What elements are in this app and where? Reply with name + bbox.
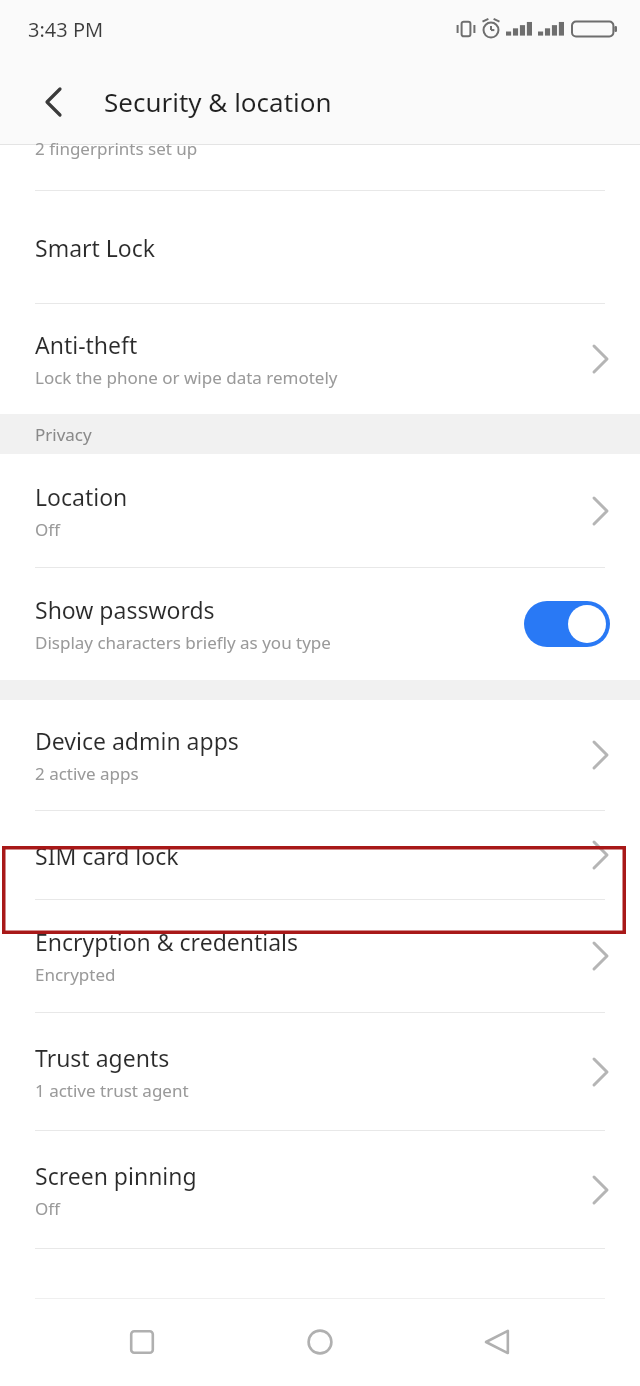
staticText: Device admin apps bbox=[35, 725, 239, 756]
staticText: Show passwords bbox=[35, 594, 215, 625]
staticText: Location bbox=[35, 481, 128, 512]
staticText: Display characters briefly as you type bbox=[35, 631, 331, 654]
button[interactable]: SIM card lock bbox=[0, 811, 640, 899]
staticText: Security & location bbox=[104, 84, 332, 119]
staticText: SIM card lock bbox=[35, 840, 179, 871]
button[interactable]: Screen pinning bbox=[0, 1131, 640, 1248]
staticText: 2 active apps bbox=[35, 762, 139, 785]
button[interactable]: Show passwords toggle, on bbox=[524, 601, 610, 647]
staticText: 1 active trust agent bbox=[35, 1079, 189, 1102]
button[interactable]: Show passwords bbox=[0, 568, 640, 680]
button[interactable]: Back bbox=[462, 1306, 534, 1378]
button[interactable]: Location bbox=[0, 454, 640, 567]
button[interactable]: Recents bbox=[106, 1306, 178, 1378]
staticText: Off bbox=[35, 518, 60, 541]
button[interactable]: 2 fingerprints set up bbox=[0, 145, 640, 190]
staticText: Encrypted bbox=[35, 963, 116, 986]
button[interactable]: Trust agents bbox=[0, 1013, 640, 1130]
staticText: Privacy bbox=[35, 423, 92, 446]
button[interactable]: Encryption & credentials bbox=[0, 900, 640, 1012]
staticText: Smart Lock bbox=[35, 232, 156, 263]
button[interactable]: Smart Lock bbox=[0, 191, 640, 303]
staticText: 3:43 PM bbox=[28, 16, 104, 43]
staticText: Off bbox=[35, 1197, 60, 1220]
button[interactable]: Anti-theft bbox=[0, 304, 640, 414]
staticText: Trust agents bbox=[35, 1042, 170, 1073]
staticText: Anti-theft bbox=[35, 329, 138, 360]
staticText: Encryption & credentials bbox=[35, 926, 299, 957]
button[interactable]: Home bbox=[284, 1306, 356, 1378]
button[interactable]: Back bbox=[18, 67, 88, 137]
staticText: Lock the phone or wipe data remotely bbox=[35, 366, 338, 389]
button[interactable]: Device admin apps bbox=[0, 700, 640, 810]
staticText: 2 fingerprints set up bbox=[35, 137, 198, 160]
staticText: Screen pinning bbox=[35, 1160, 197, 1191]
